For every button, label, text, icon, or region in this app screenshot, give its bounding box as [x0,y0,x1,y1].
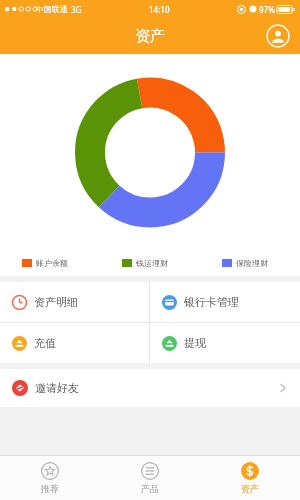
staticText: 银行卡管理 [184,295,239,309]
button[interactable]: 邀请好友 [0,369,300,407]
button[interactable]: 产品 [100,456,200,500]
button[interactable]: 提现 [150,323,300,363]
staticText: 97% [259,4,275,15]
staticText: 资产 [135,27,165,46]
staticText: 14:10 [149,4,170,15]
staticText: 邀请好友 [35,381,79,395]
button[interactable]: Profile [266,24,290,48]
staticText: 充值 [34,336,56,350]
button[interactable]: 银行卡管理 [150,282,300,322]
button[interactable]: 充值 [0,323,149,363]
button[interactable]: 推荐 [0,456,100,500]
staticText: 账户余额 [36,258,68,268]
staticText: 推荐 [41,483,59,494]
staticText: 3G [71,4,82,15]
staticText: 提现 [184,336,206,350]
staticText: 资产明细 [34,295,78,309]
staticText: 产品 [141,483,159,494]
button[interactable]: 资产 [200,456,300,500]
staticText: 钱运理财 [136,258,168,268]
staticText: 中国联通 [36,4,68,14]
staticText: 保险理财 [236,258,268,268]
staticText: 资产 [241,483,259,494]
button[interactable]: 资产明细 [0,282,149,322]
